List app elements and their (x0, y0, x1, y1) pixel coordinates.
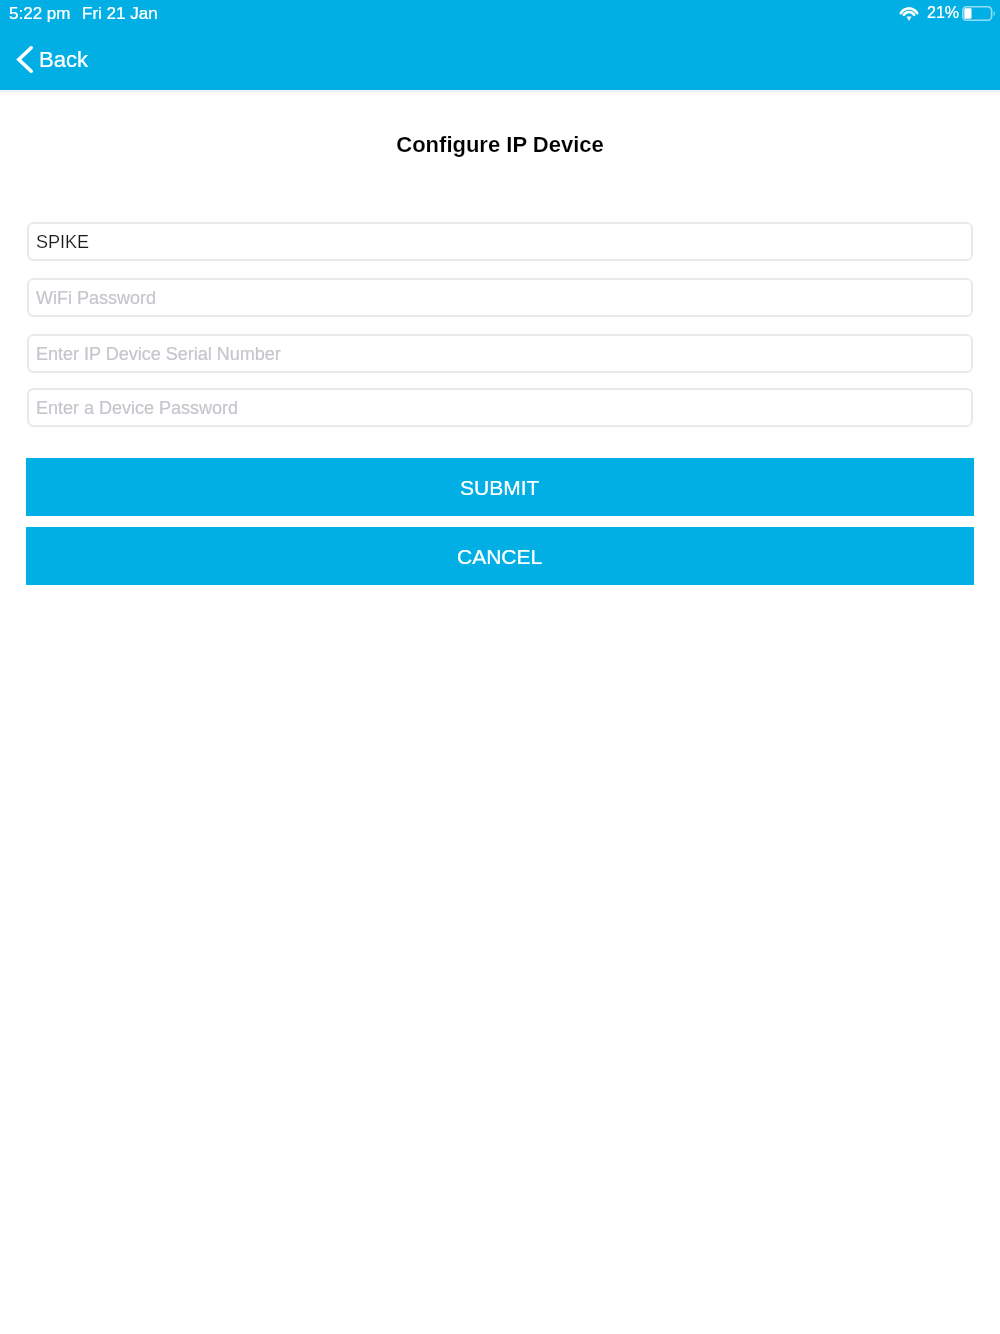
button[interactable]: WiFi Password (27, 278, 973, 317)
other: Battery 21 percent (962, 6, 996, 21)
other: Wi-Fi connected (899, 5, 919, 21)
staticText: 5:22 pm (9, 4, 71, 23)
button[interactable]: CANCEL (26, 527, 974, 585)
button[interactable]: SUBMIT (26, 458, 974, 516)
staticText: SPIKE (36, 232, 90, 252)
staticText: CANCEL (457, 545, 543, 568)
staticText: SUBMIT (460, 476, 540, 499)
button[interactable]: Enter IP Device Serial Number (27, 334, 973, 373)
button[interactable]: Enter a Device Password (27, 388, 973, 427)
button[interactable]: Back (0, 36, 106, 82)
staticText: Enter a Device Password (36, 398, 239, 418)
staticText: WiFi Password (36, 288, 157, 308)
staticText: 21% (927, 4, 960, 22)
staticText: Configure IP Device (0, 132, 1000, 157)
staticText: Back (39, 47, 88, 72)
staticText: Enter IP Device Serial Number (36, 344, 281, 364)
button[interactable]: SPIKE (27, 222, 973, 261)
staticText: Fri 21 Jan (82, 4, 158, 23)
